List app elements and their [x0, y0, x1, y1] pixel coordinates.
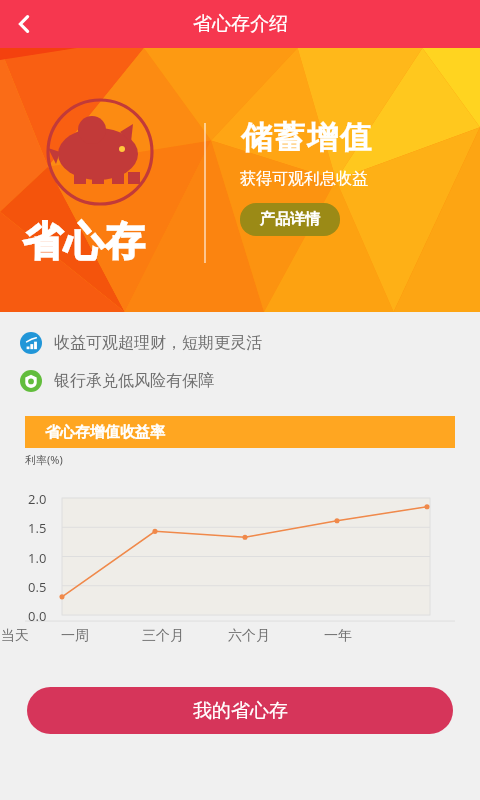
staticText: 1.0 [28, 549, 47, 567]
button[interactable]: 产品详情 [240, 203, 340, 236]
staticText: 三个月 [142, 627, 184, 645]
button[interactable]: 我的省心存 [27, 687, 453, 734]
staticText: 银行承兑低风险有保障 [54, 371, 214, 391]
staticText: 收益可观超理财，短期更灵活 [54, 333, 262, 353]
staticText: 省心存增值收益率 [45, 423, 165, 442]
staticText: 1.5 [28, 519, 47, 537]
staticText: 利率(%) [25, 452, 63, 467]
staticText: 获得可观利息收益 [240, 169, 368, 189]
button[interactable]: Back [0, 0, 48, 48]
button[interactable]: 收益可观超理财，短期更灵活 [0, 328, 480, 358]
staticText: 一年 [324, 627, 352, 645]
staticText: 储蓄增值 [240, 118, 372, 157]
button[interactable]: 省心存增值收益率 [25, 416, 455, 448]
button[interactable]: 银行承兑低风险有保障 [0, 366, 480, 396]
staticText: 产品详情 [260, 210, 320, 229]
staticText: 0.0 [28, 607, 47, 623]
staticText: 省心存介绍 [193, 12, 288, 36]
staticText: 2.0 [28, 490, 47, 508]
staticText: 一周 [61, 627, 89, 645]
staticText: 0.5 [28, 578, 47, 596]
staticText: 我的省心存 [193, 699, 288, 723]
staticText: 六个月 [228, 627, 270, 645]
staticText: 当天 [1, 627, 29, 645]
staticText: 省心存 [22, 216, 145, 266]
